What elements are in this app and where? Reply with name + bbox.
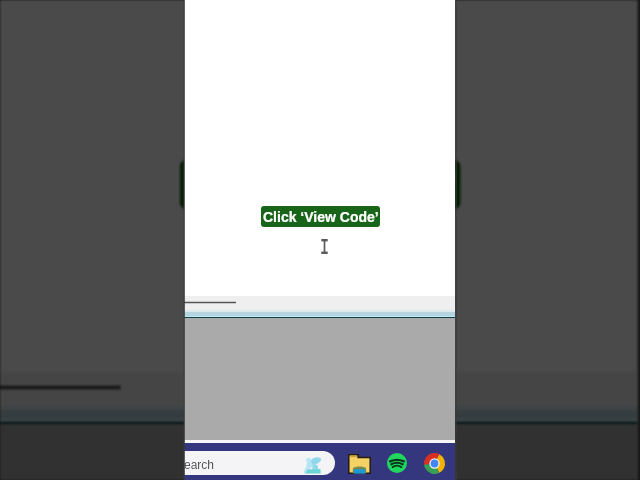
staticText: Search	[184, 458, 215, 471]
button[interactable]: Spotify	[387, 453, 407, 473]
staticText: Click ‘View Code’	[184, 167, 458, 205]
button[interactable]: Click ‘View Code’	[180, 160, 461, 209]
button[interactable]: Click ‘View Code’	[261, 206, 380, 227]
button[interactable]: Search	[184, 451, 335, 475]
button[interactable]: File Explorer	[348, 454, 371, 474]
button[interactable]: Google Chrome	[424, 453, 445, 474]
staticText: Click ‘View Code’	[263, 209, 379, 225]
